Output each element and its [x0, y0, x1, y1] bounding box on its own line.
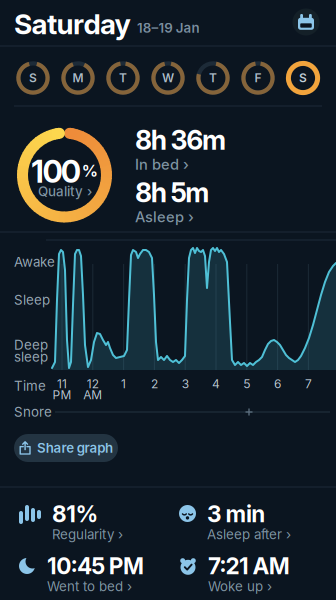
staticText: T	[209, 71, 217, 85]
staticText: 18–19 Jan	[137, 20, 199, 36]
staticText: Awake	[14, 254, 55, 270]
button[interactable]: 7:21 AM	[179, 554, 334, 595]
staticText: 8h 36m	[135, 124, 226, 156]
button[interactable]: S	[286, 61, 320, 95]
staticText: %	[82, 161, 98, 180]
staticText: 6	[274, 377, 281, 391]
staticText: 11	[57, 377, 67, 391]
staticText: M	[72, 71, 83, 85]
staticText: In bed ›	[135, 156, 189, 173]
staticText: F	[254, 71, 261, 85]
button[interactable]	[292, 8, 319, 35]
staticText: Asleep ›	[135, 208, 194, 226]
staticText: 81%	[52, 501, 99, 527]
staticText: PM	[52, 388, 71, 402]
staticText: 12	[87, 377, 99, 391]
staticText: 1	[121, 377, 126, 391]
button[interactable]: 100	[17, 127, 112, 222]
staticText: Went to bed ›	[47, 579, 132, 594]
staticText: 3	[182, 377, 189, 391]
staticText: Time	[14, 378, 46, 394]
staticText: 3 min	[207, 501, 265, 527]
staticText: W	[162, 71, 174, 85]
button[interactable]: 3 min	[179, 502, 334, 543]
button[interactable]: 10:45 PM	[19, 554, 174, 595]
button[interactable]: T	[106, 61, 140, 95]
staticText: Saturday	[14, 7, 130, 40]
staticText: Sleep	[14, 292, 50, 308]
button[interactable]: W	[151, 61, 185, 95]
staticText: 2	[151, 377, 158, 391]
staticText: 7	[305, 377, 312, 391]
staticText: 100	[31, 153, 81, 190]
staticText: Regularity ›	[52, 527, 123, 542]
staticText: S	[299, 71, 307, 85]
staticText: sleep	[14, 349, 48, 365]
staticText: 8h 5m	[135, 177, 209, 208]
staticText: 4	[212, 377, 220, 391]
button[interactable]: 81%	[19, 502, 174, 543]
button[interactable]: Share graph	[14, 434, 118, 462]
staticText: Asleep after ›	[207, 527, 291, 542]
staticText: Deep	[14, 337, 48, 353]
button[interactable]: M	[61, 61, 95, 95]
staticText: 7:21 AM	[208, 553, 290, 579]
staticText: 10:45 PM	[47, 553, 144, 579]
button[interactable]: 8h 5m	[135, 178, 255, 227]
button[interactable]: F	[241, 61, 275, 95]
button[interactable]: T	[196, 61, 230, 95]
staticText: Woke up ›	[208, 579, 272, 594]
staticText: AM	[83, 388, 102, 402]
button[interactable]: S	[16, 61, 50, 95]
staticText: 5	[243, 377, 250, 391]
staticText: Quality ›	[38, 184, 92, 199]
button[interactable]: 8h 36m	[135, 126, 255, 175]
staticText: T	[119, 71, 127, 85]
staticText: Snore	[14, 404, 52, 420]
staticText: S	[29, 71, 37, 85]
staticText: Share graph	[37, 440, 113, 456]
